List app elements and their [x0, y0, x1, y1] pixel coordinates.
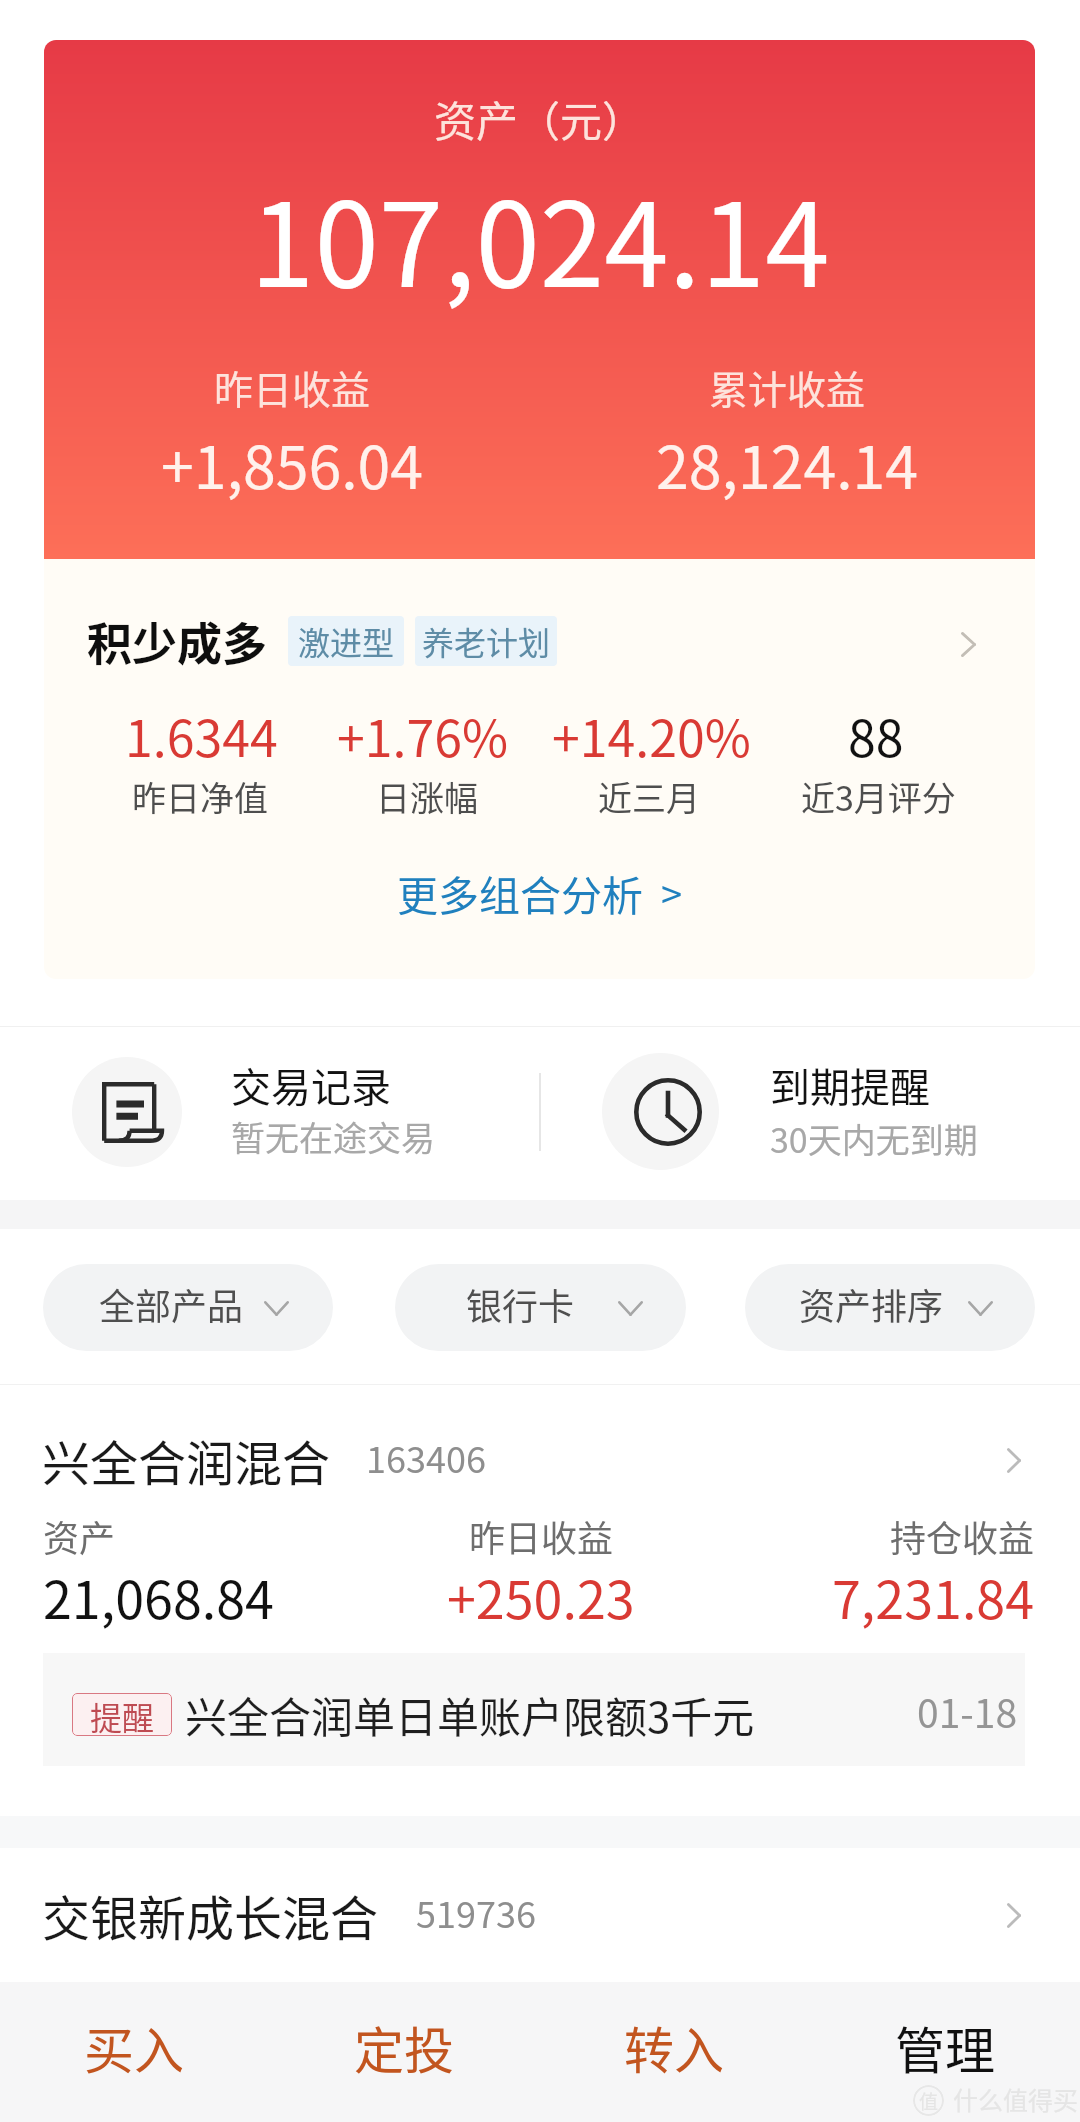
staticText: 管理 — [895, 2011, 995, 2083]
staticText: 01-18 — [917, 1683, 1018, 1739]
other: 交易记录 — [102, 1082, 162, 1143]
other: 到期提醒 — [634, 1078, 702, 1146]
staticText: 107,024.14 — [250, 152, 830, 320]
staticText: +1,856.04 — [161, 421, 424, 506]
button[interactable]: 定投 — [269, 1982, 539, 2122]
staticText: 日涨幅 — [376, 772, 478, 821]
staticText: 累计收益 — [709, 359, 866, 415]
staticText: 定投 — [354, 2011, 454, 2083]
button[interactable]: 资产排序 — [745, 1264, 1035, 1351]
button[interactable]: 更多组合分析 — [397, 863, 683, 922]
button[interactable]: 提醒 — [43, 1653, 1025, 1766]
staticText: 值 — [919, 2087, 939, 2115]
staticText: 更多组合分析 — [397, 863, 643, 922]
button[interactable]: 银行卡 — [395, 1264, 686, 1351]
staticText: 30天内无到期 — [770, 1114, 978, 1163]
staticText: 资产（元） — [434, 88, 645, 149]
staticText: 28,124.14 — [656, 421, 919, 506]
staticText: 养老计划 — [422, 618, 551, 664]
button[interactable]: 积少成多 — [44, 559, 1035, 979]
staticText: 资产排序 — [799, 1278, 944, 1330]
button[interactable]: 全部产品 — [43, 1264, 333, 1351]
staticText: 激进型 — [298, 618, 395, 664]
staticText: 昨日收益 — [469, 1510, 614, 1562]
button[interactable]: 转入 — [539, 1982, 809, 2122]
staticText: +250.23 — [447, 1559, 635, 1634]
staticText: 全部产品 — [99, 1278, 244, 1330]
staticText: > — [661, 865, 683, 920]
staticText: 7,231.84 — [832, 1559, 1035, 1634]
staticText: 什么值得买 — [953, 2081, 1079, 2117]
button[interactable]: 兴全合润混合 — [0, 1385, 1080, 1810]
button[interactable]: 到期提醒 — [540, 1027, 1080, 1196]
button[interactable]: 资产（元） — [44, 40, 1035, 559]
staticText: 积少成多 — [87, 609, 268, 674]
staticText: 近3月评分 — [801, 772, 956, 821]
staticText: 交银新成长混合 — [42, 1880, 379, 1950]
staticText: 资产 — [43, 1510, 116, 1562]
staticText: 昨日收益 — [214, 359, 371, 415]
staticText: 21,068.84 — [43, 1559, 274, 1634]
staticText: 近三月 — [598, 772, 700, 821]
staticText: 兴全合润混合 — [42, 1425, 331, 1495]
staticText: 提醒 — [90, 1693, 155, 1736]
staticText: 到期提醒 — [770, 1056, 930, 1114]
staticText: 转入 — [624, 2011, 724, 2083]
staticText: 519736 — [416, 1886, 536, 1938]
button[interactable]: 管理 — [810, 1982, 1080, 2122]
staticText: +14.20% — [552, 699, 751, 771]
staticText: 买入 — [84, 2011, 184, 2083]
staticText: 兴全合润单日单账户限额3千元 — [185, 1684, 755, 1745]
button[interactable]: 买入 — [0, 1982, 269, 2122]
staticText: 1.6344 — [125, 699, 278, 771]
staticText: 交易记录 — [231, 1056, 391, 1114]
staticText: 银行卡 — [466, 1278, 575, 1330]
staticText: 163406 — [366, 1431, 486, 1483]
button[interactable]: 交易记录 — [0, 1027, 540, 1196]
staticText: +1.76% — [337, 699, 508, 771]
staticText: 持仓收益 — [890, 1510, 1035, 1562]
staticText: 88 — [848, 699, 904, 771]
staticText: 暂无在途交易 — [231, 1112, 435, 1161]
button[interactable]: 交银新成长混合 — [0, 1848, 1080, 1963]
staticText: 昨日净值 — [132, 772, 268, 821]
